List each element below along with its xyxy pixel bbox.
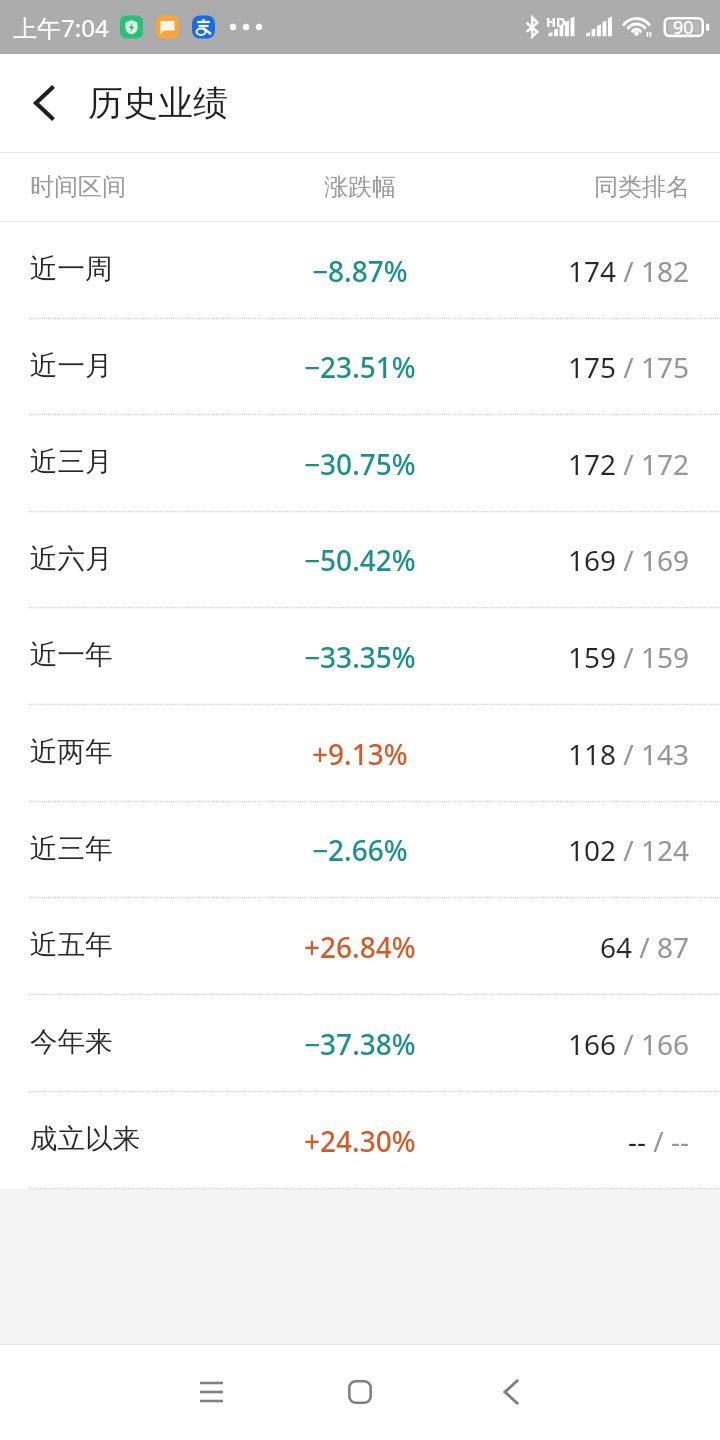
staticText: 175 / 175 [568,348,690,386]
staticText: 时间区间 [30,172,126,202]
staticText: 历史业绩 [88,81,228,125]
staticText: 成立以来 [30,1122,140,1157]
staticText: 90 [673,15,694,40]
button[interactable]: 近一年 [0,608,720,705]
button[interactable]: 近五年 [0,898,720,995]
staticText: 172 / 172 [568,445,690,483]
staticText: 118 / 143 [568,735,690,773]
staticText: −33.35% [304,638,416,676]
button[interactable]: 成立以来 [0,1092,720,1189]
button[interactable]: 近三年 [0,802,720,898]
staticText: 同类排名 [594,172,690,202]
staticText: 近一年 [30,638,113,673]
staticText: +24.30% [304,1122,416,1160]
staticText: 102 / 124 [568,831,690,869]
button[interactable]: 今年来 [0,995,720,1092]
staticText: 166 / 166 [568,1025,690,1063]
staticText: 近五年 [30,928,113,963]
staticText: 近三年 [30,832,113,867]
staticText: 近一月 [30,349,113,384]
staticText: −37.38% [304,1025,416,1063]
button[interactable]: 近两年 [0,705,720,802]
staticText: −23.51% [304,348,416,386]
staticText: 涨跌幅 [324,172,396,202]
staticText: −2.66% [312,831,408,869]
staticText: 159 / 159 [568,638,690,676]
staticText: 上午7:04 [13,11,109,44]
staticText: 近两年 [30,735,113,770]
staticText: −30.75% [304,445,416,483]
staticText: −8.87% [312,252,408,290]
staticText: 近六月 [30,542,113,577]
staticText: 64 / 87 [600,928,690,966]
staticText: 近一周 [30,252,113,287]
staticText: HD [546,13,566,31]
staticText: +26.84% [304,928,416,966]
button[interactable]: Recent apps [161,1344,261,1440]
staticText: -- / -- [628,1122,690,1160]
staticText: 174 / 182 [568,252,690,290]
button[interactable]: 近三月 [0,415,720,512]
staticText: 169 / 169 [568,541,690,579]
button[interactable]: 近一月 [0,319,720,415]
staticText: +9.13% [312,735,408,773]
button[interactable]: Back [461,1344,561,1440]
button[interactable]: 近一周 [0,222,720,319]
staticText: −50.42% [304,541,416,579]
button[interactable]: Back [0,54,88,152]
staticText: 近三月 [30,445,113,480]
button[interactable]: Home [310,1344,410,1440]
staticText: 今年来 [30,1025,113,1060]
button[interactable]: 近六月 [0,512,720,608]
